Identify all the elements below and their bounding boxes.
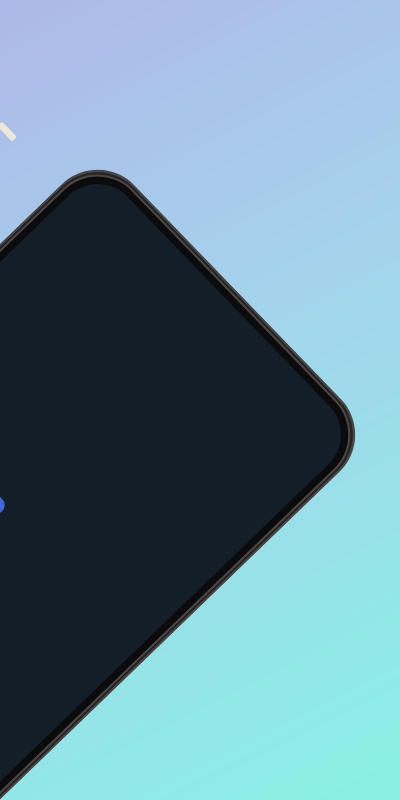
button[interactable]: MailBuddy © 2023	[0, 401, 8, 527]
